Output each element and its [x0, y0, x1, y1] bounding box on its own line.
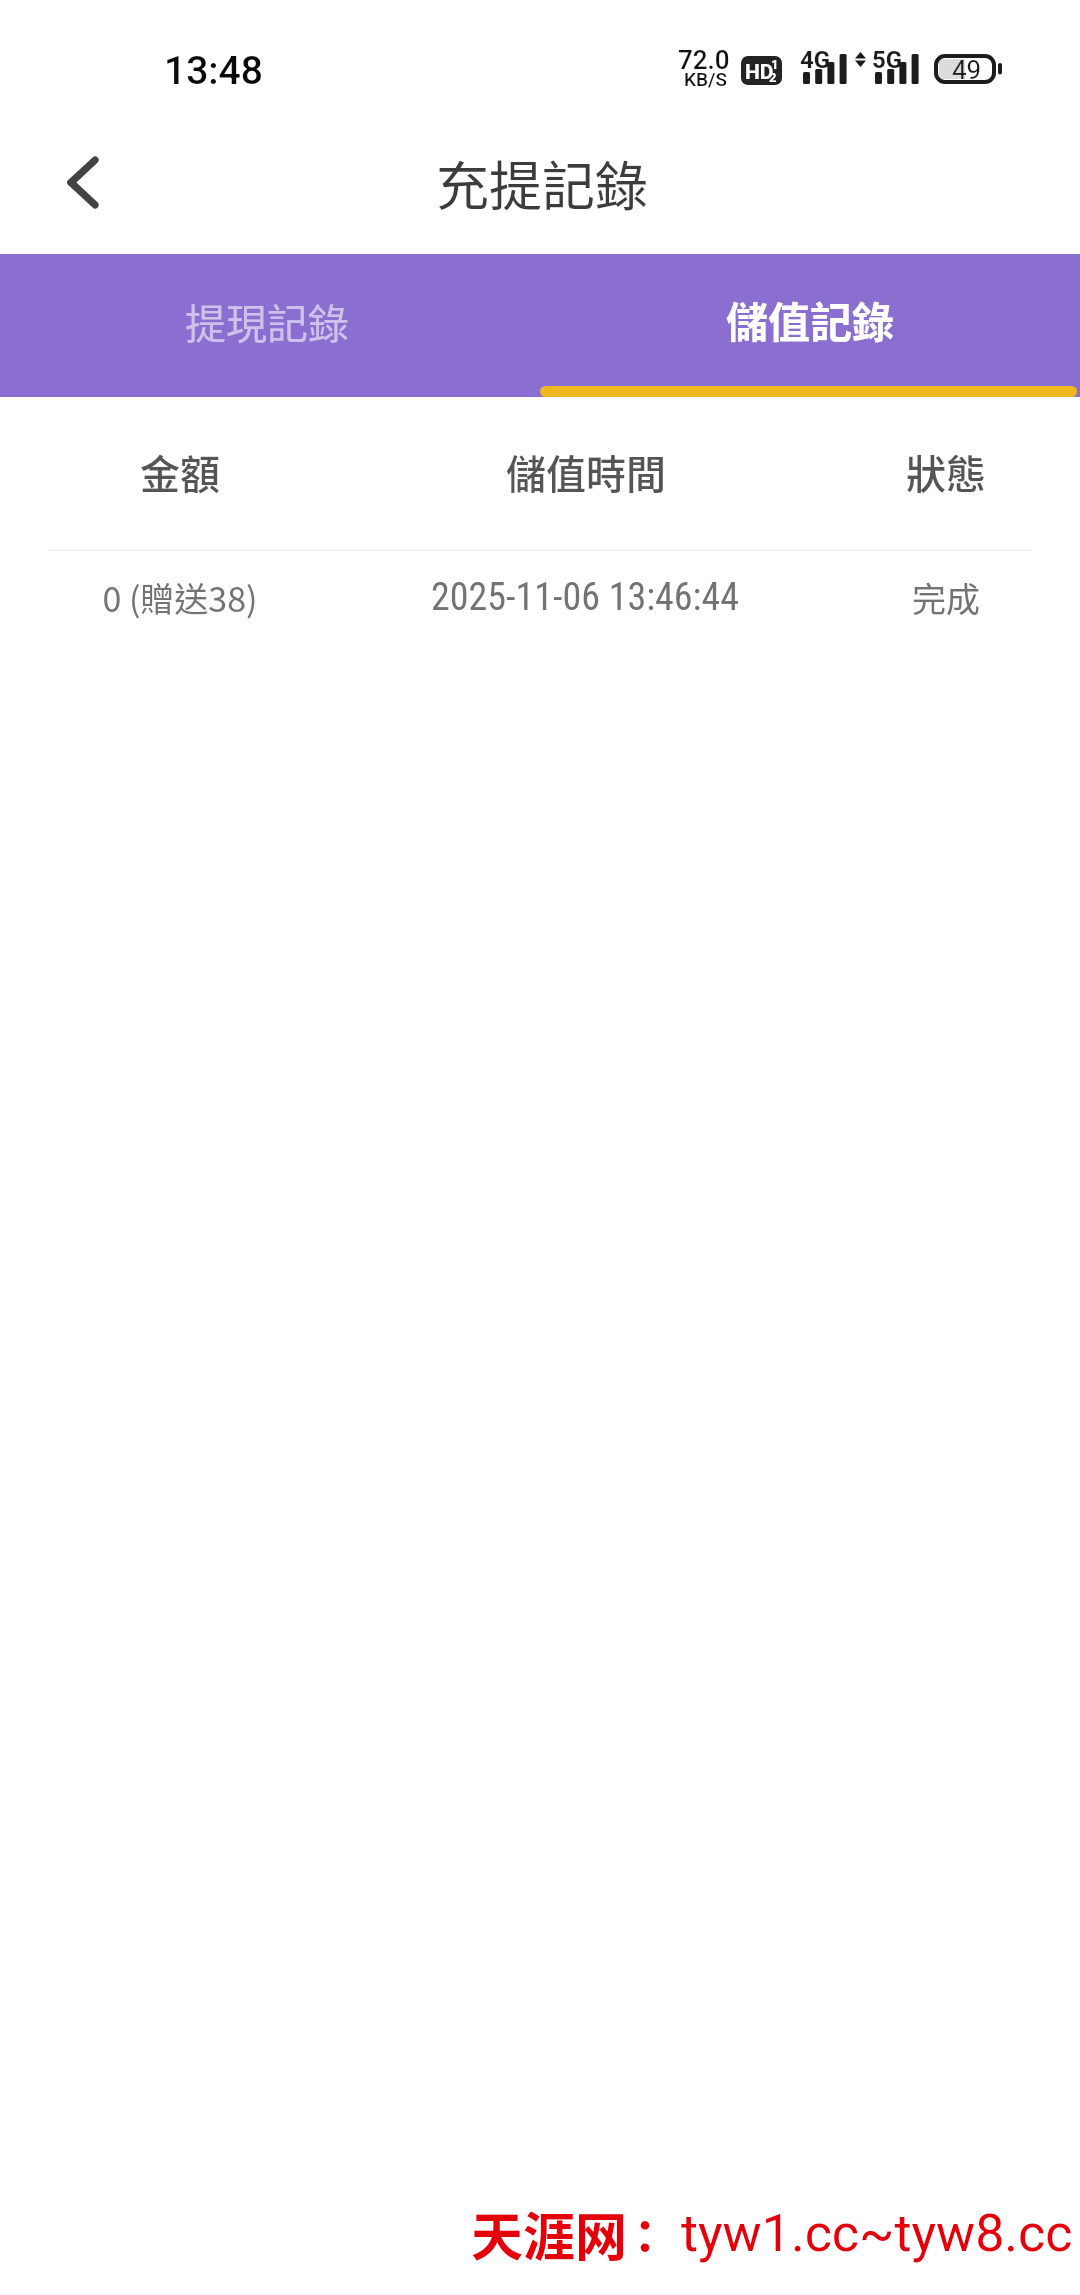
staticText: 儲值時間 [506, 443, 666, 501]
button[interactable]: Back [10, 110, 140, 254]
staticText: 金額 [140, 443, 220, 501]
staticText: 72.0 [678, 45, 730, 75]
staticText: 0 (贈送38) [102, 573, 258, 622]
staticText: ： [622, 2200, 668, 2267]
button[interactable]: 儲值記錄 [540, 254, 1080, 397]
staticText: 儲值記錄 [726, 289, 895, 350]
staticText: 5G [872, 46, 903, 74]
staticText: KB/S [684, 68, 727, 90]
staticText: 完成 [912, 573, 980, 622]
staticText: 天涯网 [471, 2196, 628, 2271]
staticText: 充提記錄 [436, 145, 648, 222]
staticText: 2 [769, 70, 777, 85]
button[interactable]: 0 (贈送38) [0, 552, 1080, 662]
staticText: 提現記錄 [185, 291, 349, 350]
staticText: HD [745, 60, 774, 85]
staticText: tyw1.cc~tyw8.cc [681, 2203, 1073, 2264]
staticText: 4G [800, 46, 831, 74]
staticText: 狀態 [906, 443, 986, 501]
staticText: 1 [771, 57, 779, 72]
staticText: 49 [952, 55, 982, 85]
button[interactable]: 提現記錄 [0, 254, 540, 397]
staticText: 2025-11-06 13:46:44 [431, 575, 739, 620]
staticText: 13:48 [164, 48, 263, 94]
